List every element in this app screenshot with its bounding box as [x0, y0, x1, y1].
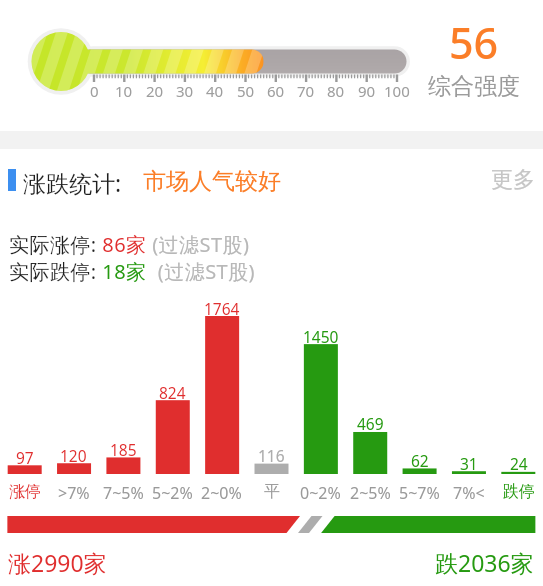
- staticText: 综合强度: [428, 72, 520, 101]
- staticText: 1764: [204, 298, 240, 319]
- button[interactable]: 跌停 24: [494, 300, 543, 498]
- button[interactable]: >7% 120: [49, 300, 98, 498]
- staticText: 469: [357, 413, 384, 434]
- staticText: 62: [411, 450, 429, 471]
- button[interactable]: 综合强度 56: [0, 0, 543, 131]
- button[interactable]: [0, 158, 460, 202]
- staticText: 31: [460, 453, 478, 474]
- button[interactable]: 7%< 31: [444, 300, 493, 498]
- staticText: 2~0%: [201, 482, 242, 504]
- staticText: 824: [159, 382, 186, 403]
- button[interactable]: 涨停 97: [0, 300, 49, 498]
- button[interactable]: 0~2% 1450: [296, 300, 345, 498]
- staticText: 涨2990家: [8, 547, 107, 578]
- button[interactable]: 2~5% 469: [346, 300, 395, 498]
- staticText: 0: [90, 81, 99, 101]
- button[interactable]: 5~2% 824: [148, 300, 197, 498]
- staticText: 跌停: [503, 482, 535, 502]
- staticText: 120: [60, 445, 87, 466]
- staticText: 24: [510, 453, 528, 474]
- staticText: 10: [115, 81, 133, 101]
- staticText: 平: [264, 482, 280, 502]
- button[interactable]: 7~5% 185: [99, 300, 148, 498]
- staticText: 7%<: [453, 482, 485, 504]
- button[interactable]: 2~0% 1764: [197, 300, 246, 498]
- staticText: 实际涨停: 86家 (过滤ST股): [9, 231, 250, 258]
- staticText: 30: [176, 81, 194, 101]
- staticText: 5~2%: [152, 482, 193, 504]
- staticText: 60: [267, 81, 285, 101]
- staticText: 100: [384, 81, 410, 101]
- staticText: 97: [16, 447, 34, 468]
- button[interactable]: 平 116: [247, 300, 296, 498]
- staticText: 实际跌停: 18家 (过滤ST股): [9, 258, 256, 285]
- staticText: 0~2%: [300, 482, 341, 504]
- staticText: 涨停: [9, 482, 41, 502]
- staticText: 7~5%: [103, 482, 144, 504]
- staticText: 5~7%: [399, 482, 440, 504]
- staticText: 185: [110, 439, 137, 460]
- staticText: 更多: [491, 166, 535, 194]
- staticText: 70: [297, 81, 315, 101]
- staticText: 90: [358, 81, 376, 101]
- staticText: 116: [258, 445, 285, 466]
- staticText: 市场人气较好: [143, 167, 281, 196]
- button[interactable]: 5~7% 62: [395, 300, 444, 498]
- staticText: 80: [327, 81, 345, 101]
- staticText: 20: [146, 81, 164, 101]
- staticText: 涨跌统计:: [23, 167, 122, 198]
- staticText: 1450: [303, 326, 339, 347]
- button[interactable]: 更多: [470, 160, 535, 200]
- staticText: >7%: [58, 482, 90, 504]
- staticText: 50: [237, 81, 255, 101]
- staticText: 40: [206, 81, 224, 101]
- staticText: 56: [449, 13, 499, 72]
- staticText: 跌2036家: [435, 547, 534, 578]
- staticText: 2~5%: [350, 482, 391, 504]
